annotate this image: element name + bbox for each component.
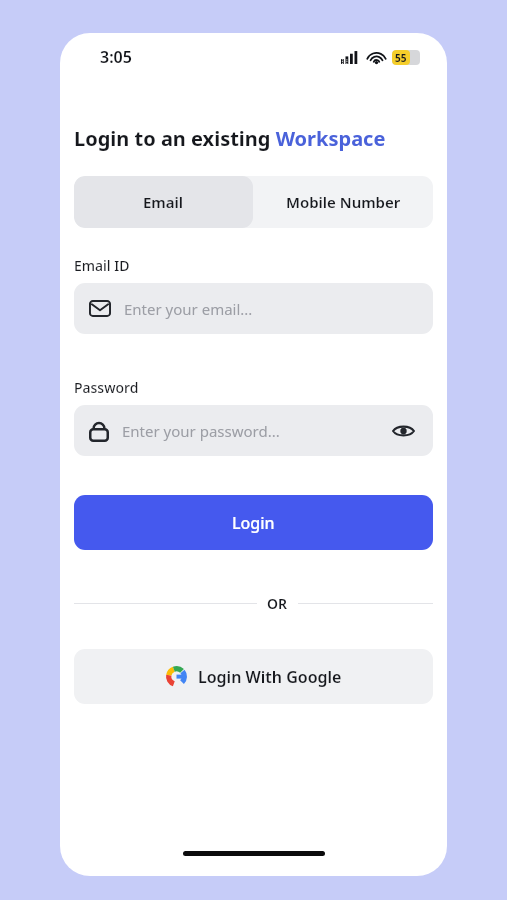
button[interactable]: Show password: [383, 411, 423, 451]
button[interactable]: Enter your email...: [74, 283, 433, 334]
staticText: OR: [267, 594, 288, 613]
staticText: Email ID: [74, 256, 130, 275]
button[interactable]: Enter your password...: [74, 405, 433, 456]
staticText: 55: [395, 51, 407, 65]
staticText: Enter your password...: [122, 421, 280, 441]
button[interactable]: Login With Google: [74, 649, 433, 704]
staticText: Email: [143, 192, 184, 212]
button[interactable]: Email: [74, 176, 253, 228]
button[interactable]: Login: [74, 495, 433, 550]
staticText: Mobile Number: [286, 192, 401, 212]
staticText: Login to an existing Workspace: [74, 125, 386, 152]
staticText: Login With Google: [198, 666, 342, 688]
staticText: Login: [232, 512, 275, 534]
staticText: Password: [74, 378, 139, 397]
staticText: Enter your email...: [124, 299, 253, 319]
staticText: 3:05: [100, 46, 132, 68]
button[interactable]: Mobile Number: [253, 176, 433, 228]
